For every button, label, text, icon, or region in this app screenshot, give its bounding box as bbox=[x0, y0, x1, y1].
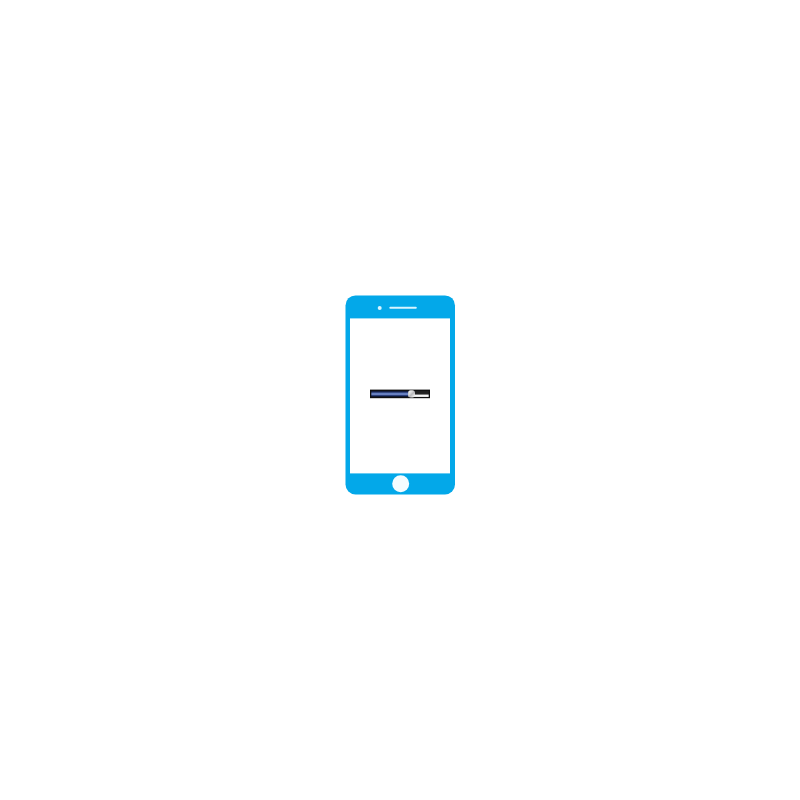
button[interactable]: Smartphone loading progress illustration bbox=[346, 295, 456, 494]
